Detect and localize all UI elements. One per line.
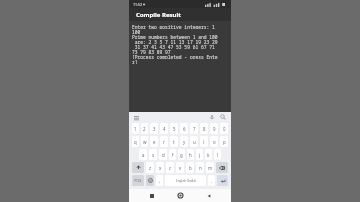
- staticText: v: [179, 165, 182, 171]
- staticText: 2: [143, 126, 146, 132]
- button[interactable]: v: [176, 162, 184, 173]
- staticText: s: [152, 152, 155, 158]
- button[interactable]: a: [139, 149, 147, 160]
- button[interactable]: 0: [220, 123, 228, 134]
- staticText: i: [203, 139, 205, 145]
- staticText: m: [208, 165, 213, 171]
- staticText: 31 37 41 43 47 53 59 61 67 71: [132, 44, 215, 49]
- button[interactable]: c: [166, 162, 174, 173]
- button[interactable]: Menu: [134, 115, 139, 120]
- staticText: f: [172, 152, 174, 158]
- staticText: 8: [203, 126, 206, 132]
- button[interactable]: y: [180, 136, 188, 147]
- staticText: Compile Result: [136, 11, 181, 19]
- staticText: 1: [134, 126, 137, 132]
- button[interactable]: Emoji: [146, 175, 154, 186]
- staticText: 6: [183, 126, 186, 132]
- button[interactable]: 9: [210, 123, 218, 134]
- staticText: k: [207, 152, 210, 158]
- button[interactable]: f: [169, 149, 176, 160]
- button[interactable]: j: [196, 149, 203, 160]
- button[interactable]: 2: [141, 123, 148, 134]
- staticText: q: [134, 139, 137, 145]
- staticText: Enter two positive integers: 1: [132, 24, 215, 29]
- button[interactable]: Symbols: [132, 175, 144, 186]
- staticText: x: [159, 165, 162, 171]
- staticText: n: [199, 165, 202, 171]
- button[interactable]: z: [146, 162, 154, 173]
- staticText: r]: [132, 59, 138, 64]
- button[interactable]: Search: [220, 114, 226, 120]
- staticText: t: [173, 139, 175, 145]
- staticText: 7: [193, 126, 196, 132]
- button[interactable]: b: [186, 162, 194, 173]
- staticText: w: [143, 139, 147, 145]
- staticText: 3: [153, 126, 156, 132]
- button[interactable]: k: [205, 149, 212, 160]
- staticText: !?123: [134, 179, 142, 183]
- staticText: l: [217, 152, 219, 158]
- staticText: d: [162, 152, 165, 158]
- staticText: c: [169, 165, 172, 171]
- staticText: h: [189, 152, 192, 158]
- button[interactable]: p: [220, 136, 228, 147]
- button[interactable]: w: [141, 136, 148, 147]
- button[interactable]: Home: [175, 190, 186, 201]
- staticText: r: [163, 139, 165, 145]
- button[interactable]: Shift: [132, 162, 144, 173]
- staticText: are: 2 3 5 7 11 13 17 19 23 29: [132, 39, 218, 44]
- staticText: English (India): [176, 179, 196, 183]
- button[interactable]: 5: [170, 123, 178, 134]
- button[interactable]: i: [200, 136, 208, 147]
- button[interactable]: s: [149, 149, 157, 160]
- staticText: 11:52: [133, 2, 142, 7]
- staticText: g: [180, 152, 183, 158]
- button[interactable]: Voice input: [209, 114, 215, 120]
- staticText: p: [223, 139, 226, 145]
- button[interactable]: 3: [150, 123, 158, 134]
- staticText: j: [199, 152, 201, 158]
- staticText: o: [213, 139, 216, 145]
- button[interactable]: g: [178, 149, 185, 160]
- button[interactable]: e: [150, 136, 158, 147]
- button[interactable]: 7: [190, 123, 198, 134]
- button[interactable]: h: [187, 149, 194, 160]
- button[interactable]: l: [214, 149, 221, 160]
- button[interactable]: n: [196, 162, 204, 173]
- button[interactable]: r: [160, 136, 168, 147]
- staticText: [Process completed - press Ente: [132, 54, 218, 59]
- staticText: z: [149, 165, 152, 171]
- button[interactable]: u: [190, 136, 198, 147]
- staticText: ,: [159, 178, 161, 184]
- button[interactable]: ,: [156, 175, 163, 186]
- button[interactable]: q: [132, 136, 139, 147]
- staticText: b: [189, 165, 192, 171]
- button[interactable]: 6: [180, 123, 188, 134]
- staticText: a: [142, 152, 145, 158]
- button[interactable]: x: [156, 162, 164, 173]
- staticText: 5: [173, 126, 176, 132]
- staticText: 9: [213, 126, 216, 132]
- staticText: 4: [163, 126, 166, 132]
- button[interactable]: English (India): [165, 175, 206, 186]
- staticText: 73 79 83 89 97: [132, 49, 171, 54]
- staticText: .: [211, 178, 213, 184]
- staticText: 0: [223, 126, 226, 132]
- staticText: u: [193, 139, 196, 145]
- button[interactable]: o: [210, 136, 218, 147]
- staticText: e: [153, 139, 156, 145]
- button[interactable]: d: [159, 149, 167, 160]
- button[interactable]: 1: [132, 123, 139, 134]
- staticText: Prime numbers between 1 and 100: [132, 34, 218, 39]
- button[interactable]: 8: [200, 123, 208, 134]
- button[interactable]: Back: [203, 190, 214, 201]
- button[interactable]: Enter: [217, 175, 228, 186]
- button[interactable]: .: [208, 175, 215, 186]
- button[interactable]: m: [206, 162, 214, 173]
- button[interactable]: Recents: [146, 190, 157, 201]
- button[interactable]: t: [170, 136, 178, 147]
- button[interactable]: Backspace: [216, 162, 228, 173]
- button[interactable]: 4: [160, 123, 168, 134]
- staticText: 100: [132, 29, 141, 34]
- staticText: y: [183, 139, 186, 145]
